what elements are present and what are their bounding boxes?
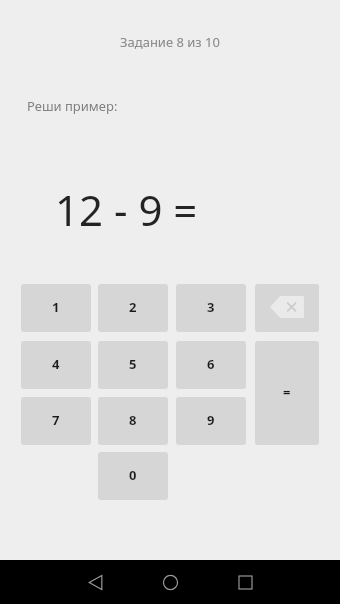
button[interactable]: 3 xyxy=(176,284,246,330)
button[interactable]: 0 xyxy=(98,452,168,498)
staticText: Задание 8 из 10 xyxy=(0,33,340,51)
staticText: Реши пример: xyxy=(27,97,118,115)
button[interactable]: 8 xyxy=(98,397,168,443)
button[interactable]: 9 xyxy=(176,397,246,443)
button[interactable]: Recent apps xyxy=(225,562,265,602)
button[interactable]: 4 xyxy=(21,341,91,387)
staticText: 0 xyxy=(129,466,137,484)
button[interactable]: 6 xyxy=(176,341,246,387)
staticText: 2 xyxy=(129,298,137,316)
staticText: 7 xyxy=(52,411,60,429)
button[interactable]: Home xyxy=(150,562,190,602)
button[interactable]: 1 xyxy=(21,284,91,330)
staticText: 1 xyxy=(52,298,60,316)
button[interactable]: 2 xyxy=(98,284,168,330)
staticText: 5 xyxy=(129,355,137,373)
staticText: 9 xyxy=(207,411,215,429)
staticText: 6 xyxy=(207,355,215,373)
staticText: 12 - 9 = xyxy=(55,181,198,238)
button[interactable]: 7 xyxy=(21,397,91,443)
button[interactable]: Back xyxy=(75,562,115,602)
staticText: 3 xyxy=(207,298,215,316)
staticText: = xyxy=(283,383,291,401)
button[interactable]: Equals xyxy=(255,341,319,443)
staticText: 8 xyxy=(129,411,137,429)
staticText: 4 xyxy=(52,355,60,373)
button[interactable]: Backspace xyxy=(255,284,319,330)
button[interactable]: 5 xyxy=(98,341,168,387)
